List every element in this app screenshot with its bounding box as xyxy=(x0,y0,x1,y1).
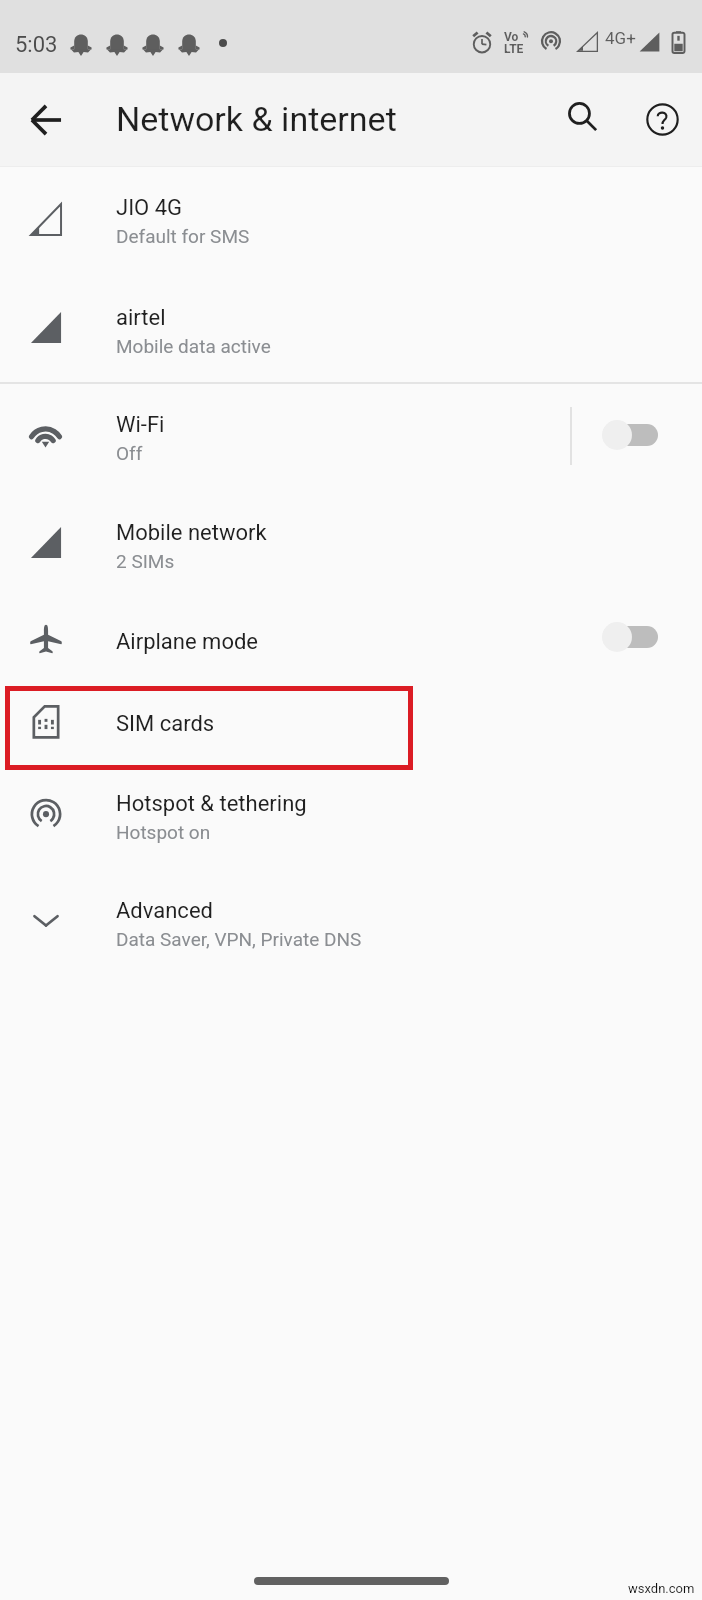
staticText: Vo xyxy=(504,30,519,44)
staticText: wsxdn.com xyxy=(628,1581,695,1596)
staticText: 5:03 xyxy=(15,32,58,58)
staticText: Default for SMS xyxy=(116,225,250,247)
staticText: Advanced xyxy=(116,898,213,924)
staticText: 2 SIMs xyxy=(116,550,175,572)
staticText: 4G+ xyxy=(605,28,636,48)
staticText: Data Saver, VPN, Private DNS xyxy=(116,928,362,950)
staticText: Hotspot & tethering xyxy=(116,791,307,817)
button[interactable]: JIO 4G xyxy=(0,170,702,278)
button[interactable]: Hotspot & tethering xyxy=(0,766,702,874)
button[interactable]: airtel xyxy=(0,280,702,388)
button[interactable]: Airplane mode toggle xyxy=(594,612,668,662)
button[interactable]: Help xyxy=(632,73,692,166)
staticText: Network & internet xyxy=(116,99,397,139)
staticText: Hotspot on xyxy=(116,821,211,843)
staticText: JIO 4G xyxy=(116,195,183,221)
button[interactable]: Wi-Fi xyxy=(0,387,702,495)
staticText: Wi-Fi xyxy=(116,412,165,438)
button[interactable]: SIM cards xyxy=(0,686,702,766)
button[interactable]: Advanced xyxy=(0,873,702,981)
staticText: airtel xyxy=(116,305,166,331)
staticText: LTE xyxy=(504,42,524,56)
button[interactable]: Airplane mode xyxy=(0,604,702,684)
button[interactable]: Wi-Fi toggle xyxy=(594,410,668,460)
button[interactable]: Back xyxy=(16,73,76,166)
staticText: SIM cards xyxy=(116,711,215,737)
button[interactable]: Mobile network xyxy=(0,495,702,603)
staticText: Mobile data active xyxy=(116,335,271,357)
staticText: Off xyxy=(116,442,143,464)
staticText: Airplane mode xyxy=(116,629,259,655)
staticText: Mobile network xyxy=(116,520,267,546)
button[interactable]: Search xyxy=(554,73,612,166)
